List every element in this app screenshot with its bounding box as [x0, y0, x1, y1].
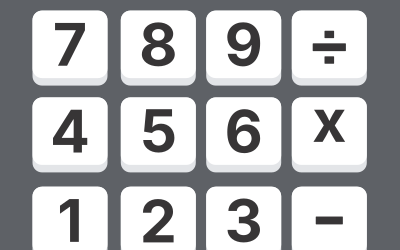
button[interactable]: 6: [206, 97, 281, 172]
button[interactable]: 3: [206, 187, 281, 250]
button[interactable]: Divide: [292, 11, 367, 86]
button[interactable]: Multiply: [292, 97, 367, 172]
button[interactable]: 8: [121, 11, 196, 86]
button[interactable]: 5: [121, 97, 196, 172]
button[interactable]: Minus: [292, 187, 367, 250]
button[interactable]: 4: [32, 97, 107, 172]
button[interactable]: 9: [206, 11, 281, 86]
button[interactable]: 1: [32, 187, 107, 250]
button[interactable]: 7: [32, 11, 107, 86]
button[interactable]: 2: [121, 187, 196, 250]
